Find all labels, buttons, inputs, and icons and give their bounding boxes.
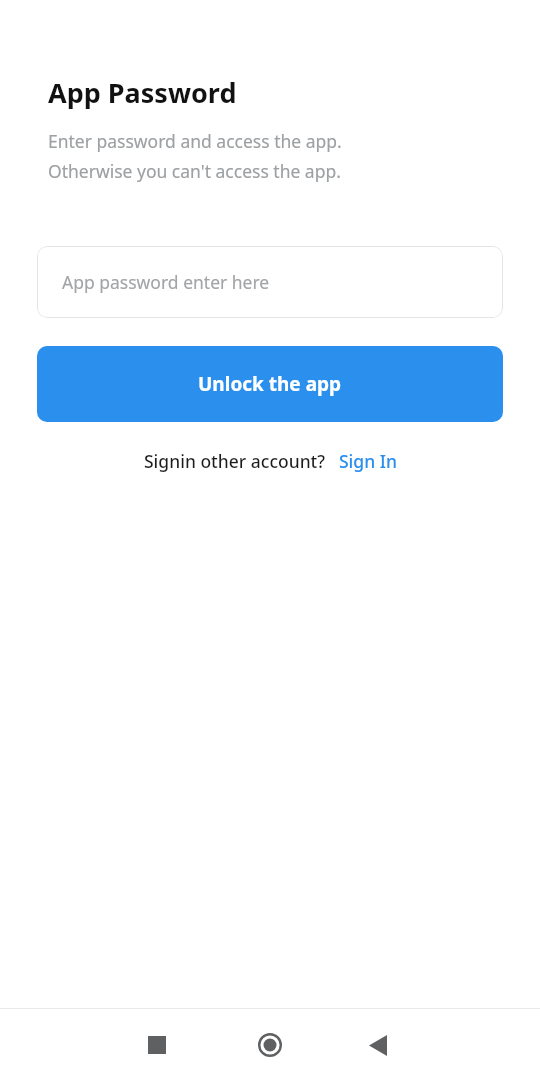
button[interactable]: Sign In — [339, 449, 397, 473]
staticText: Sign In — [339, 449, 397, 473]
staticText: Signin other account? — [144, 449, 326, 473]
staticText: App password enter here — [62, 270, 270, 294]
button[interactable]: Home — [240, 1015, 300, 1075]
staticText: Unlock the app — [198, 371, 342, 397]
staticText: App Password — [48, 74, 237, 111]
staticText: Enter password and access the app. Other… — [48, 129, 342, 183]
button[interactable]: Recent apps — [127, 1015, 187, 1075]
button[interactable]: Back — [348, 1015, 408, 1075]
button[interactable]: App password enter here — [37, 246, 503, 318]
button[interactable]: Unlock the app — [37, 346, 503, 422]
